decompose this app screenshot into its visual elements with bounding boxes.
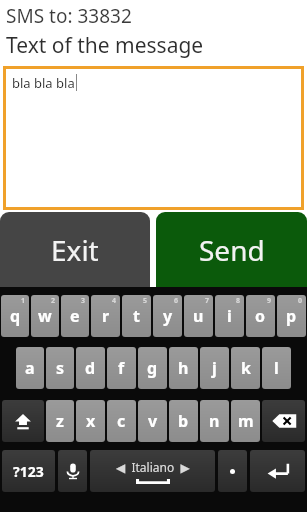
staticText: s (56, 357, 65, 379)
staticText: e (70, 305, 80, 327)
button[interactable]: y (153, 295, 182, 337)
button[interactable]: c (107, 400, 136, 442)
button[interactable]: Send (156, 212, 307, 287)
button[interactable]: f (107, 347, 136, 389)
button[interactable]: x (76, 400, 105, 442)
button[interactable]: o (246, 295, 275, 337)
button[interactable]: z (46, 400, 74, 442)
staticText: o (255, 305, 266, 327)
button[interactable]: q (1, 295, 29, 337)
staticText: t (133, 305, 140, 327)
staticText: i (227, 305, 232, 327)
staticText: n (209, 410, 220, 432)
button[interactable]: Voice input (58, 450, 87, 492)
staticText: 3 (81, 296, 86, 306)
button[interactable]: h (169, 347, 198, 389)
staticText: b (178, 410, 189, 432)
staticText: ?123 (13, 462, 44, 481)
staticText: k (241, 357, 251, 379)
staticText: ◀ Italiano ▶ (116, 459, 190, 475)
button[interactable]: n (200, 400, 229, 442)
staticText: 8 (236, 296, 241, 306)
staticText: q (10, 305, 21, 327)
button[interactable]: Space, Italiano (90, 450, 215, 492)
button[interactable]: d (76, 347, 105, 389)
staticText: d (85, 357, 96, 379)
staticText: v (148, 410, 158, 432)
button[interactable]: b (169, 400, 198, 442)
staticText: 4 (112, 296, 117, 306)
button[interactable]: m (231, 400, 260, 442)
button[interactable]: k (231, 347, 260, 389)
staticText: w (38, 305, 52, 327)
staticText: y (163, 305, 173, 327)
staticText: r (102, 305, 110, 327)
staticText: z (56, 410, 64, 432)
staticText: l (274, 357, 279, 379)
button[interactable]: r (91, 295, 120, 337)
staticText: 6 (174, 296, 179, 306)
staticText: 5 (143, 296, 148, 306)
button[interactable]: bla bla bla (6, 69, 301, 207)
button[interactable]: e (61, 295, 89, 337)
button[interactable]: l (262, 347, 291, 389)
staticText: h (178, 357, 189, 379)
staticText: m (238, 410, 254, 432)
staticText: Exit (51, 231, 99, 269)
staticText: a (25, 357, 35, 379)
button[interactable]: a (16, 347, 44, 389)
staticText: 7 (205, 296, 210, 306)
button[interactable]: Backspace (262, 400, 305, 442)
staticText: j (212, 357, 217, 379)
button[interactable]: ?123 (2, 450, 55, 492)
button[interactable]: Exit (0, 212, 150, 287)
button[interactable]: t (122, 295, 151, 337)
button[interactable]: p (277, 295, 306, 337)
button[interactable]: Period (218, 450, 247, 492)
staticText: p (286, 305, 297, 327)
button[interactable]: Enter (250, 450, 305, 492)
staticText: c (117, 410, 126, 432)
staticText: SMS to: 33832 (6, 3, 132, 29)
button[interactable]: i (215, 295, 244, 337)
button[interactable]: Shift (2, 400, 44, 442)
button[interactable]: j (200, 347, 229, 389)
staticText: g (147, 357, 158, 379)
staticText: 0 (298, 296, 303, 306)
button[interactable]: u (184, 295, 213, 337)
staticText: bla bla bla (12, 74, 75, 92)
staticText: f (118, 357, 125, 379)
staticText: x (86, 410, 96, 432)
staticText: u (193, 305, 204, 327)
staticText: Send (199, 231, 265, 269)
button[interactable]: v (138, 400, 167, 442)
button[interactable]: w (31, 295, 59, 337)
staticText: 9 (267, 296, 272, 306)
staticText: Text of the message (6, 31, 204, 60)
staticText: 1 (21, 296, 26, 306)
button[interactable]: g (138, 347, 167, 389)
staticText: 2 (51, 296, 56, 306)
button[interactable]: s (46, 347, 74, 389)
